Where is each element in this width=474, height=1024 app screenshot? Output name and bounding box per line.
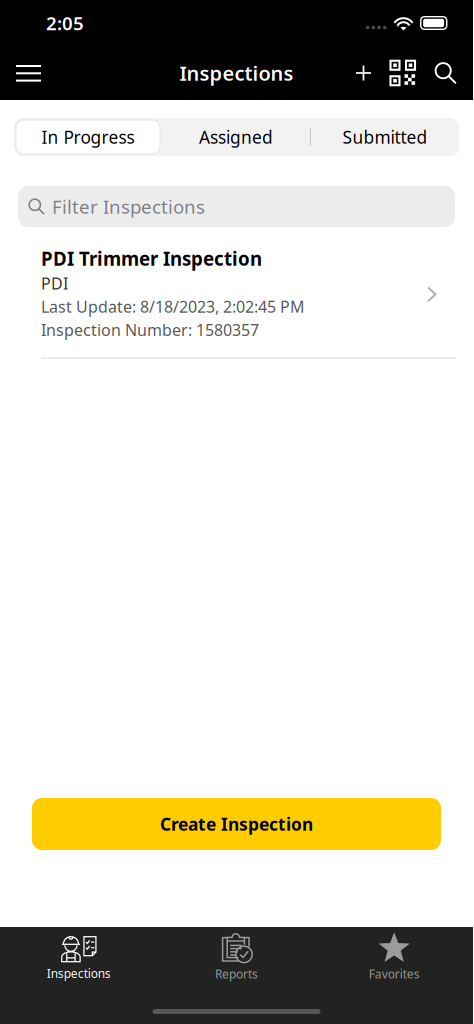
button[interactable]: Search xyxy=(425,51,457,94)
staticText: PDI Trimmer Inspection xyxy=(41,246,262,271)
button[interactable]: Menu xyxy=(14,53,43,93)
staticText: Create Inspection xyxy=(160,812,313,835)
button[interactable]: Submitted xyxy=(311,118,459,156)
staticText: PDI xyxy=(41,273,68,294)
button[interactable]: In Progress xyxy=(14,118,162,156)
staticText: Submitted xyxy=(342,125,427,148)
button[interactable]: Scan code xyxy=(380,50,425,96)
button[interactable]: Inspections xyxy=(0,927,158,991)
staticText: Assigned xyxy=(199,125,273,148)
staticText: Inspections xyxy=(179,60,293,86)
button[interactable]: Favorites xyxy=(315,927,473,992)
staticText: Inspections xyxy=(47,965,111,981)
button[interactable]: Create Inspection xyxy=(32,798,441,850)
staticText: In Progress xyxy=(41,125,134,148)
staticText: Inspection Number: 1580357 xyxy=(41,319,259,340)
button[interactable]: PDI Trimmer Inspection xyxy=(0,231,473,359)
staticText: Last Update: 8/18/2023, 2:02:45 PM xyxy=(41,296,305,317)
staticText: Favorites xyxy=(369,966,420,982)
button[interactable]: Add inspection xyxy=(346,55,380,91)
staticText: Filter Inspections xyxy=(52,194,205,219)
staticText: 2:05 xyxy=(46,11,84,35)
button[interactable]: Assigned xyxy=(162,118,310,156)
staticText: Reports xyxy=(215,966,258,982)
button[interactable]: Reports xyxy=(158,927,315,992)
